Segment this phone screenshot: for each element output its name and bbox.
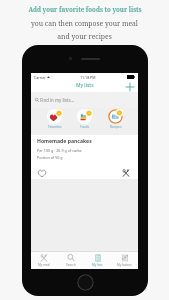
staticText: Search: [66, 263, 76, 267]
button[interactable]: My factors: [111, 252, 138, 269]
staticText: My factors: [117, 263, 132, 267]
staticText: and your recipes: [57, 32, 112, 41]
staticText: 11:18 PM: [80, 75, 96, 80]
button[interactable]: My lists: [84, 252, 111, 269]
staticText: Carrier: [34, 75, 46, 80]
staticText: Add your favorite foods to your lists: [28, 5, 142, 13]
staticText: My lists: [76, 82, 94, 89]
button[interactable]: Search: [57, 252, 84, 269]
button[interactable]: Find in my lists...: [31, 92, 138, 108]
button[interactable]: Foods: [77, 109, 92, 129]
staticText: My meal: [38, 263, 50, 267]
staticText: Recipes: [110, 125, 122, 129]
staticText: Per 100 g : 26.9 g of carbs: [37, 148, 82, 153]
button[interactable]: My meal: [31, 252, 57, 269]
staticText: Find in my lists...: [40, 97, 75, 103]
button[interactable]: Recipes: [108, 109, 123, 129]
button[interactable]: Add to meal: [121, 168, 130, 177]
button[interactable]: Add list: [125, 82, 135, 92]
staticText: My lists: [92, 263, 103, 267]
staticText: Homemade pancakes: [37, 138, 92, 145]
button[interactable]: Favorite: [37, 168, 46, 177]
staticText: Foods: [80, 125, 89, 129]
button[interactable]: Homemade pancakes: [31, 135, 138, 179]
staticText: you can then compose your meal: [31, 19, 138, 28]
staticText: Portion of 50 g: [37, 155, 63, 160]
staticText: Favorites: [48, 125, 62, 129]
button[interactable]: Favorites: [47, 109, 62, 129]
